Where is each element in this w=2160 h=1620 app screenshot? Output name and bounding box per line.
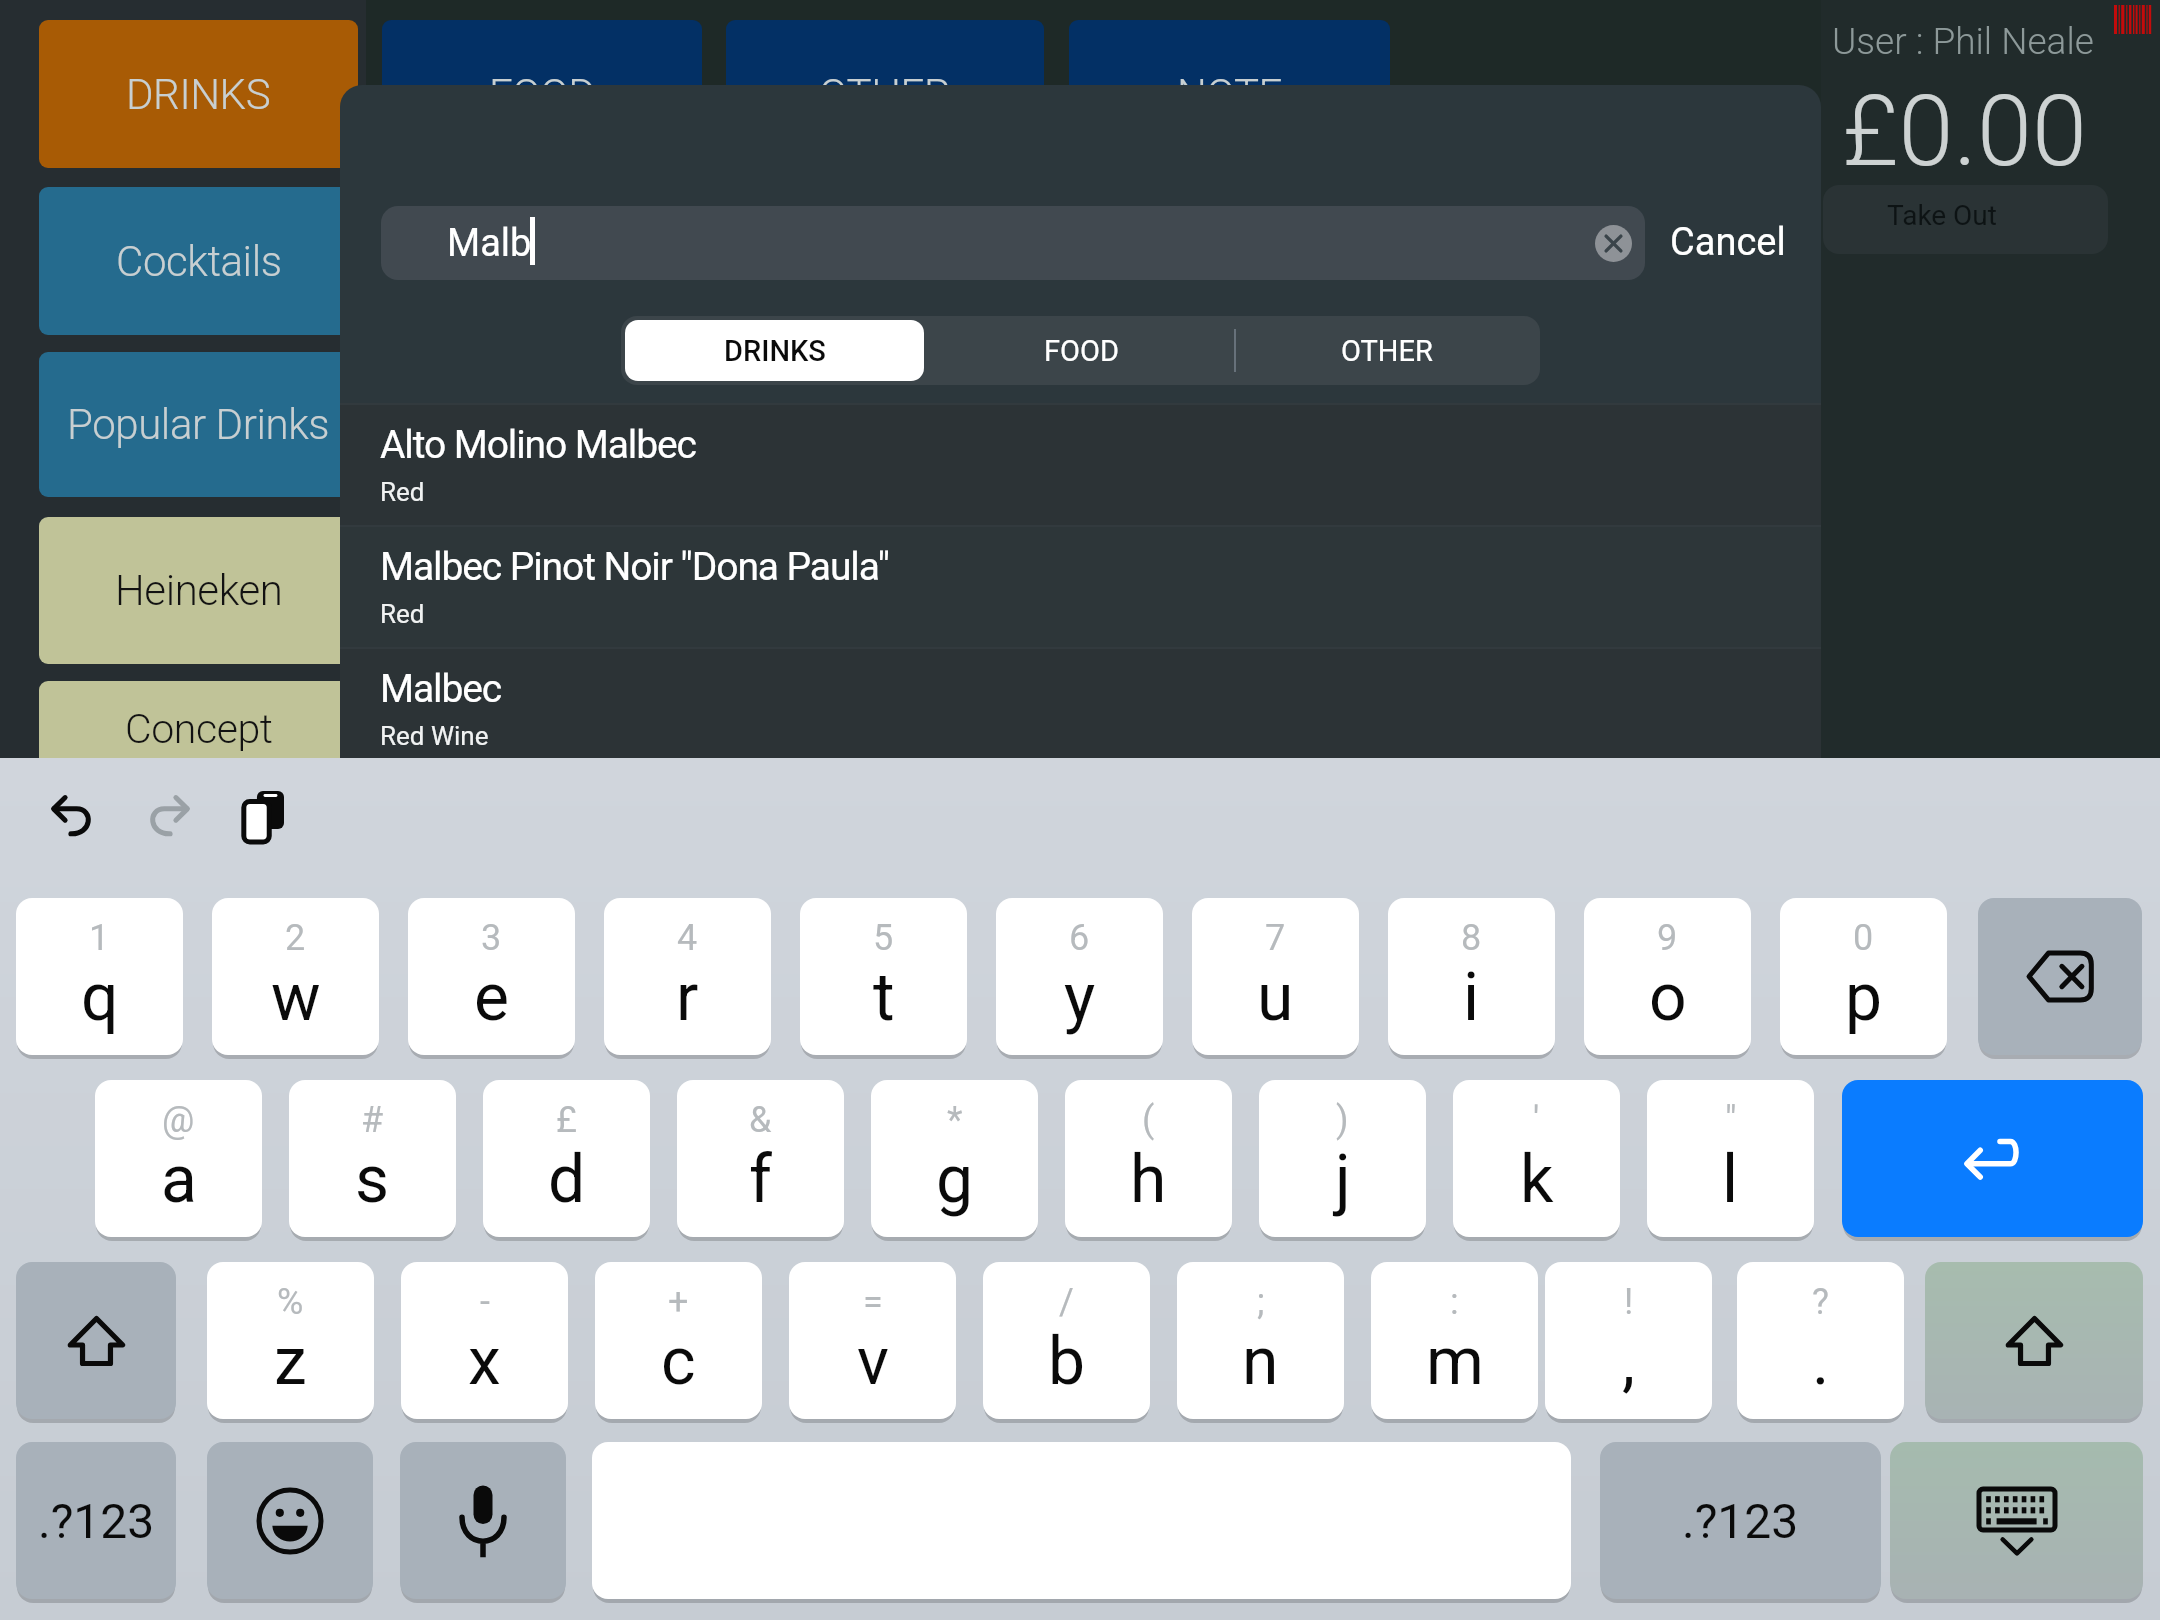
button[interactable]: Shift — [1925, 1262, 2143, 1419]
button[interactable]: = — [789, 1262, 956, 1419]
staticText: l — [1722, 1141, 1739, 1218]
button[interactable]: 6 — [996, 898, 1163, 1055]
button[interactable]: ' — [1453, 1080, 1620, 1237]
staticText: t — [873, 959, 895, 1036]
button[interactable]: ; — [1177, 1262, 1344, 1419]
staticText: & — [749, 1099, 772, 1141]
button[interactable]: + — [595, 1262, 762, 1419]
button[interactable]: 9 — [1584, 898, 1751, 1055]
button[interactable]: Cancel — [1670, 205, 1786, 279]
staticText: : — [1450, 1281, 1459, 1323]
button[interactable]: .?123 — [16, 1442, 176, 1599]
staticText: ) — [1336, 1099, 1349, 1141]
button[interactable]: DRINKS — [39, 20, 358, 168]
staticText: a — [161, 1141, 197, 1218]
staticText: 7 — [1265, 917, 1286, 959]
staticText: Red — [380, 477, 425, 507]
staticText: 3 — [481, 917, 502, 959]
staticText: Red — [380, 599, 425, 629]
staticText: o — [1649, 959, 1687, 1036]
button[interactable]: @ — [95, 1080, 262, 1237]
button[interactable]: Backspace — [1978, 898, 2142, 1055]
button[interactable]: Shift — [16, 1262, 176, 1419]
button[interactable]: / — [983, 1262, 1150, 1419]
staticText: 8 — [1461, 917, 1482, 959]
staticText: d — [548, 1141, 586, 1218]
staticText: j — [1335, 1141, 1351, 1218]
button[interactable]: Take Out — [1823, 185, 2108, 254]
staticText: Malb — [447, 221, 532, 266]
staticText: £ — [556, 1099, 577, 1141]
button[interactable]: Redo — [148, 796, 189, 835]
staticText: £0.00 — [1842, 73, 2087, 189]
button[interactable]: & — [677, 1080, 844, 1237]
button[interactable]: 2 — [212, 898, 379, 1055]
button[interactable]: 8 — [1388, 898, 1555, 1055]
staticText: ! — [1624, 1281, 1634, 1323]
button[interactable]: % — [207, 1262, 374, 1419]
button[interactable]: Emoji — [207, 1442, 373, 1599]
button[interactable]: ? — [1737, 1262, 1904, 1419]
staticText: Alto Molino Malbec — [380, 422, 696, 468]
button[interactable]: - — [401, 1262, 568, 1419]
button[interactable]: Malbec Pinot Noir "Dona Paula" — [340, 527, 1821, 647]
button[interactable]: Concept — [39, 681, 358, 776]
button[interactable]: Undo — [52, 796, 93, 835]
button[interactable]: Hide keyboard — [1890, 1442, 2143, 1599]
button[interactable]: Heineken — [39, 517, 358, 664]
staticText: User : Phil Neale — [1832, 20, 2094, 63]
button[interactable]: DRINKS — [625, 320, 924, 381]
staticText: i — [1463, 959, 1480, 1036]
button[interactable]: 3 — [408, 898, 575, 1055]
staticText: p — [1845, 959, 1883, 1036]
staticText: 6 — [1069, 917, 1090, 959]
button[interactable]: FOOD — [382, 20, 702, 168]
button[interactable]: " — [1647, 1080, 1814, 1237]
button[interactable]: Malb — [381, 206, 1645, 280]
staticText: DRINKS — [126, 70, 271, 119]
button[interactable]: 0 — [1780, 898, 1947, 1055]
staticText: . — [1812, 1323, 1830, 1400]
button[interactable]: Cocktails — [39, 187, 358, 335]
button[interactable]: Paste — [243, 791, 284, 843]
button[interactable]: Malbec — [340, 649, 1821, 769]
staticText: @ — [162, 1099, 195, 1141]
button[interactable]: OTHER — [726, 20, 1044, 168]
button[interactable]: 4 — [604, 898, 771, 1055]
button[interactable]: : — [1371, 1262, 1538, 1419]
button[interactable]: 5 — [800, 898, 967, 1055]
staticText: y — [1064, 959, 1096, 1036]
button[interactable]: £ — [483, 1080, 650, 1237]
staticText: ( — [1142, 1099, 1155, 1141]
staticText: , — [1622, 1323, 1635, 1400]
button[interactable]: OTHER — [1238, 320, 1536, 381]
button[interactable]: Alto Molino Malbec — [340, 405, 1821, 525]
button[interactable]: Popular Drinks — [39, 352, 358, 497]
button[interactable]: Voice input — [400, 1442, 566, 1599]
button[interactable]: FOOD — [932, 320, 1230, 381]
button[interactable]: ( — [1065, 1080, 1232, 1237]
button[interactable]: .?123 — [1600, 1442, 1881, 1599]
button[interactable]: ) — [1259, 1080, 1426, 1237]
button[interactable]: 1 — [16, 898, 183, 1055]
staticText: n — [1242, 1323, 1279, 1400]
button[interactable]: 7 — [1192, 898, 1359, 1055]
staticText: OTHER — [1341, 334, 1433, 368]
staticText: + — [668, 1281, 689, 1323]
staticText: = — [863, 1281, 883, 1323]
staticText: c — [661, 1323, 696, 1400]
staticText: f — [749, 1141, 772, 1218]
button[interactable]: Clear text — [1595, 225, 1632, 262]
staticText: 0 — [1853, 917, 1874, 959]
staticText: Heineken — [115, 566, 283, 615]
staticText: Malbec Pinot Noir "Dona Paula" — [380, 544, 889, 590]
button[interactable]: NOTE — [1069, 20, 1390, 168]
button[interactable]: # — [289, 1080, 456, 1237]
staticText: v — [857, 1323, 889, 1400]
button[interactable]: Enter — [1842, 1080, 2143, 1237]
button[interactable]: * — [871, 1080, 1038, 1237]
staticText: .?123 — [1682, 1493, 1799, 1549]
button[interactable]: ! — [1545, 1262, 1712, 1419]
staticText: Take Out — [1887, 199, 1997, 232]
